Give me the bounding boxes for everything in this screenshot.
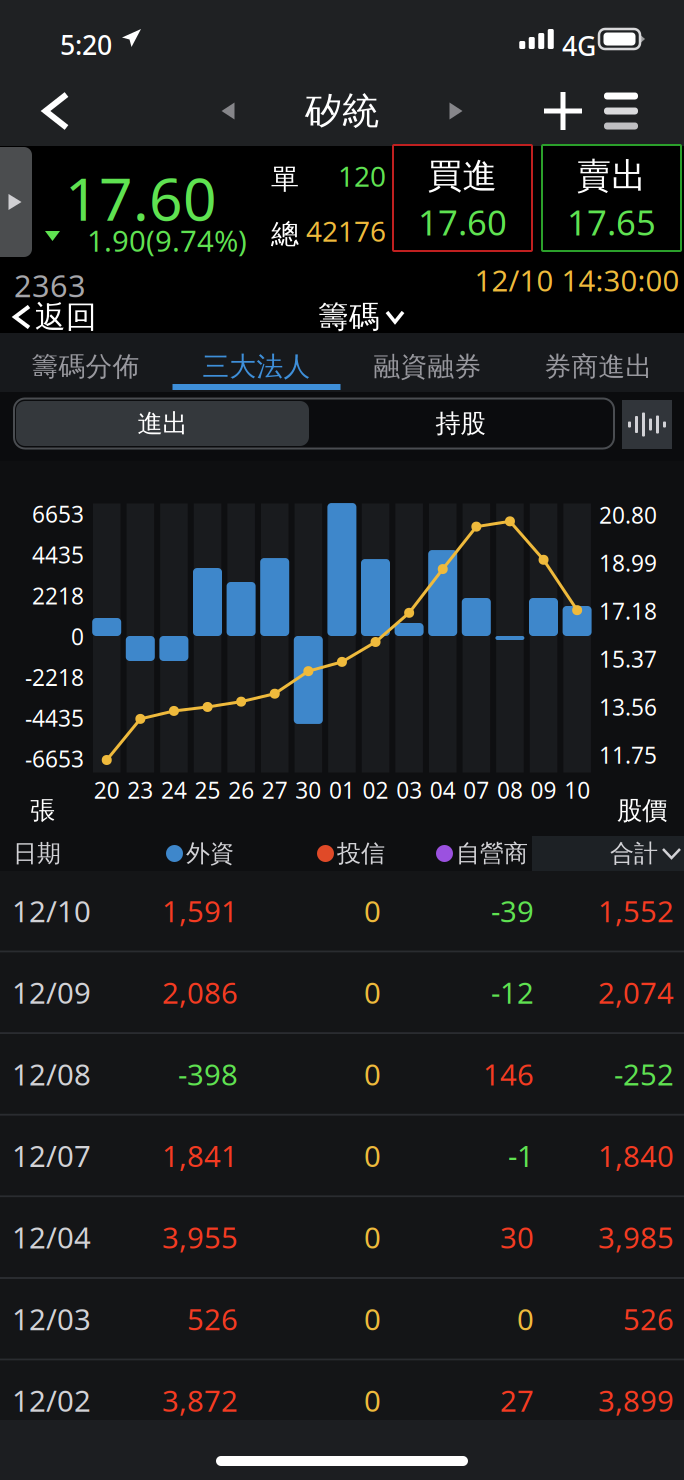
staticText: 17.60 (65, 159, 217, 237)
button[interactable]: 籌碼 (318, 298, 403, 336)
staticText: 23 (127, 775, 153, 805)
staticText: 2,074 (598, 973, 674, 1012)
staticText: 20 (94, 775, 120, 805)
staticText: 張 (30, 795, 55, 826)
staticText: 27 (262, 775, 288, 805)
staticText: 24 (161, 775, 187, 805)
staticText: 04 (430, 775, 456, 805)
staticText: 2363 (14, 265, 86, 306)
button[interactable]: 券商進出 (513, 333, 684, 392)
staticText: 0 (364, 1218, 381, 1257)
button[interactable]: Add (528, 76, 598, 146)
button[interactable]: 進出 (16, 401, 309, 446)
staticText: 0 (364, 891, 381, 930)
staticText: 1.90(9.74%) (87, 221, 247, 260)
staticText: -398 (178, 1054, 238, 1093)
staticText: 0 (71, 621, 84, 651)
staticText: 08 (497, 775, 523, 805)
button[interactable]: Expand (0, 147, 32, 257)
staticText: -252 (614, 1054, 674, 1093)
staticText: 2,086 (162, 973, 238, 1012)
staticText: 01 (329, 775, 355, 805)
staticText: 12/07 (12, 1136, 91, 1175)
staticText: 1,841 (162, 1136, 238, 1175)
staticText: 07 (463, 775, 489, 805)
button[interactable]: 12/09 (0, 953, 684, 1034)
staticText: 6653 (32, 499, 84, 529)
button[interactable]: 12/07 (0, 1116, 684, 1197)
staticText: 1,591 (162, 891, 238, 930)
button[interactable]: 12/10 (0, 871, 684, 953)
staticText: -12 (491, 973, 534, 1012)
staticText: 120 (338, 157, 386, 195)
button[interactable]: 籌碼分佈 (0, 333, 171, 392)
button[interactable]: Menu (586, 76, 656, 146)
staticText: 526 (187, 1299, 238, 1338)
staticText: 12/08 (12, 1054, 91, 1093)
button[interactable]: 12/04 (0, 1197, 684, 1279)
staticText: 15.37 (599, 644, 657, 674)
staticText: 籌碼分佈 (31, 350, 139, 383)
staticText: 0 (364, 1054, 381, 1093)
staticText: 1,840 (598, 1136, 674, 1175)
staticText: 26 (228, 775, 254, 805)
staticText: 27 (500, 1381, 534, 1420)
button[interactable]: 三大法人 (171, 333, 342, 392)
staticText: 4G (562, 28, 596, 63)
button[interactable]: 12/02 (0, 1361, 684, 1442)
button[interactable]: 買進 (393, 145, 532, 251)
staticText: 自營商 (456, 839, 528, 868)
staticText: 30 (500, 1218, 534, 1257)
staticText: -6653 (25, 744, 84, 774)
staticText: 17.60 (418, 199, 507, 245)
staticText: -39 (491, 891, 534, 930)
staticText: 12/03 (12, 1299, 91, 1338)
button[interactable]: Next (430, 76, 482, 146)
button[interactable]: 持股 (309, 401, 612, 446)
staticText: 0 (364, 973, 381, 1012)
button[interactable]: 融資融券 (342, 333, 513, 392)
staticText: -1 (508, 1136, 534, 1175)
button[interactable]: 12/08 (0, 1034, 684, 1116)
staticText: 42176 (306, 212, 386, 250)
staticText: 12/10 (12, 891, 91, 930)
staticText: 10 (564, 775, 590, 805)
button[interactable]: 賣出 (542, 145, 681, 251)
staticText: 3,955 (162, 1218, 238, 1257)
button[interactable]: Back (18, 76, 94, 146)
staticText: 合計 (610, 839, 658, 868)
staticText: 賣出 (576, 155, 646, 197)
staticText: 12/09 (12, 973, 91, 1012)
staticText: 4435 (32, 540, 84, 570)
staticText: 20.80 (599, 500, 657, 530)
staticText: 0 (517, 1299, 534, 1338)
staticText: 25 (195, 775, 221, 805)
staticText: 526 (623, 1299, 674, 1338)
staticText: 券商進出 (544, 350, 652, 383)
staticText: 11.75 (599, 740, 657, 770)
staticText: 0 (364, 1136, 381, 1175)
staticText: 日期 (13, 839, 61, 868)
staticText: 12/04 (12, 1218, 91, 1257)
staticText: 3,899 (598, 1381, 674, 1420)
staticText: 13.56 (599, 692, 657, 722)
staticText: 三大法人 (202, 350, 310, 383)
staticText: 1,552 (598, 891, 674, 930)
staticText: 3,985 (598, 1218, 674, 1257)
button[interactable]: 合計 (532, 836, 684, 871)
staticText: 投信 (337, 839, 385, 868)
staticText: 外資 (186, 839, 234, 868)
staticText: 單 (271, 162, 299, 196)
staticText: 12/10 14:30:00 (474, 260, 679, 299)
button[interactable]: 12/03 (0, 1279, 684, 1361)
staticText: 03 (396, 775, 422, 805)
staticText: 進出 (137, 408, 187, 439)
button[interactable]: Chart settings (622, 400, 672, 449)
button[interactable]: 返回 (15, 298, 107, 336)
staticText: 02 (363, 775, 389, 805)
button[interactable]: Previous (202, 76, 254, 146)
staticText: 09 (530, 775, 556, 805)
staticText: 12/02 (12, 1381, 91, 1420)
staticText: 買進 (427, 155, 497, 197)
staticText: 0 (364, 1381, 381, 1420)
